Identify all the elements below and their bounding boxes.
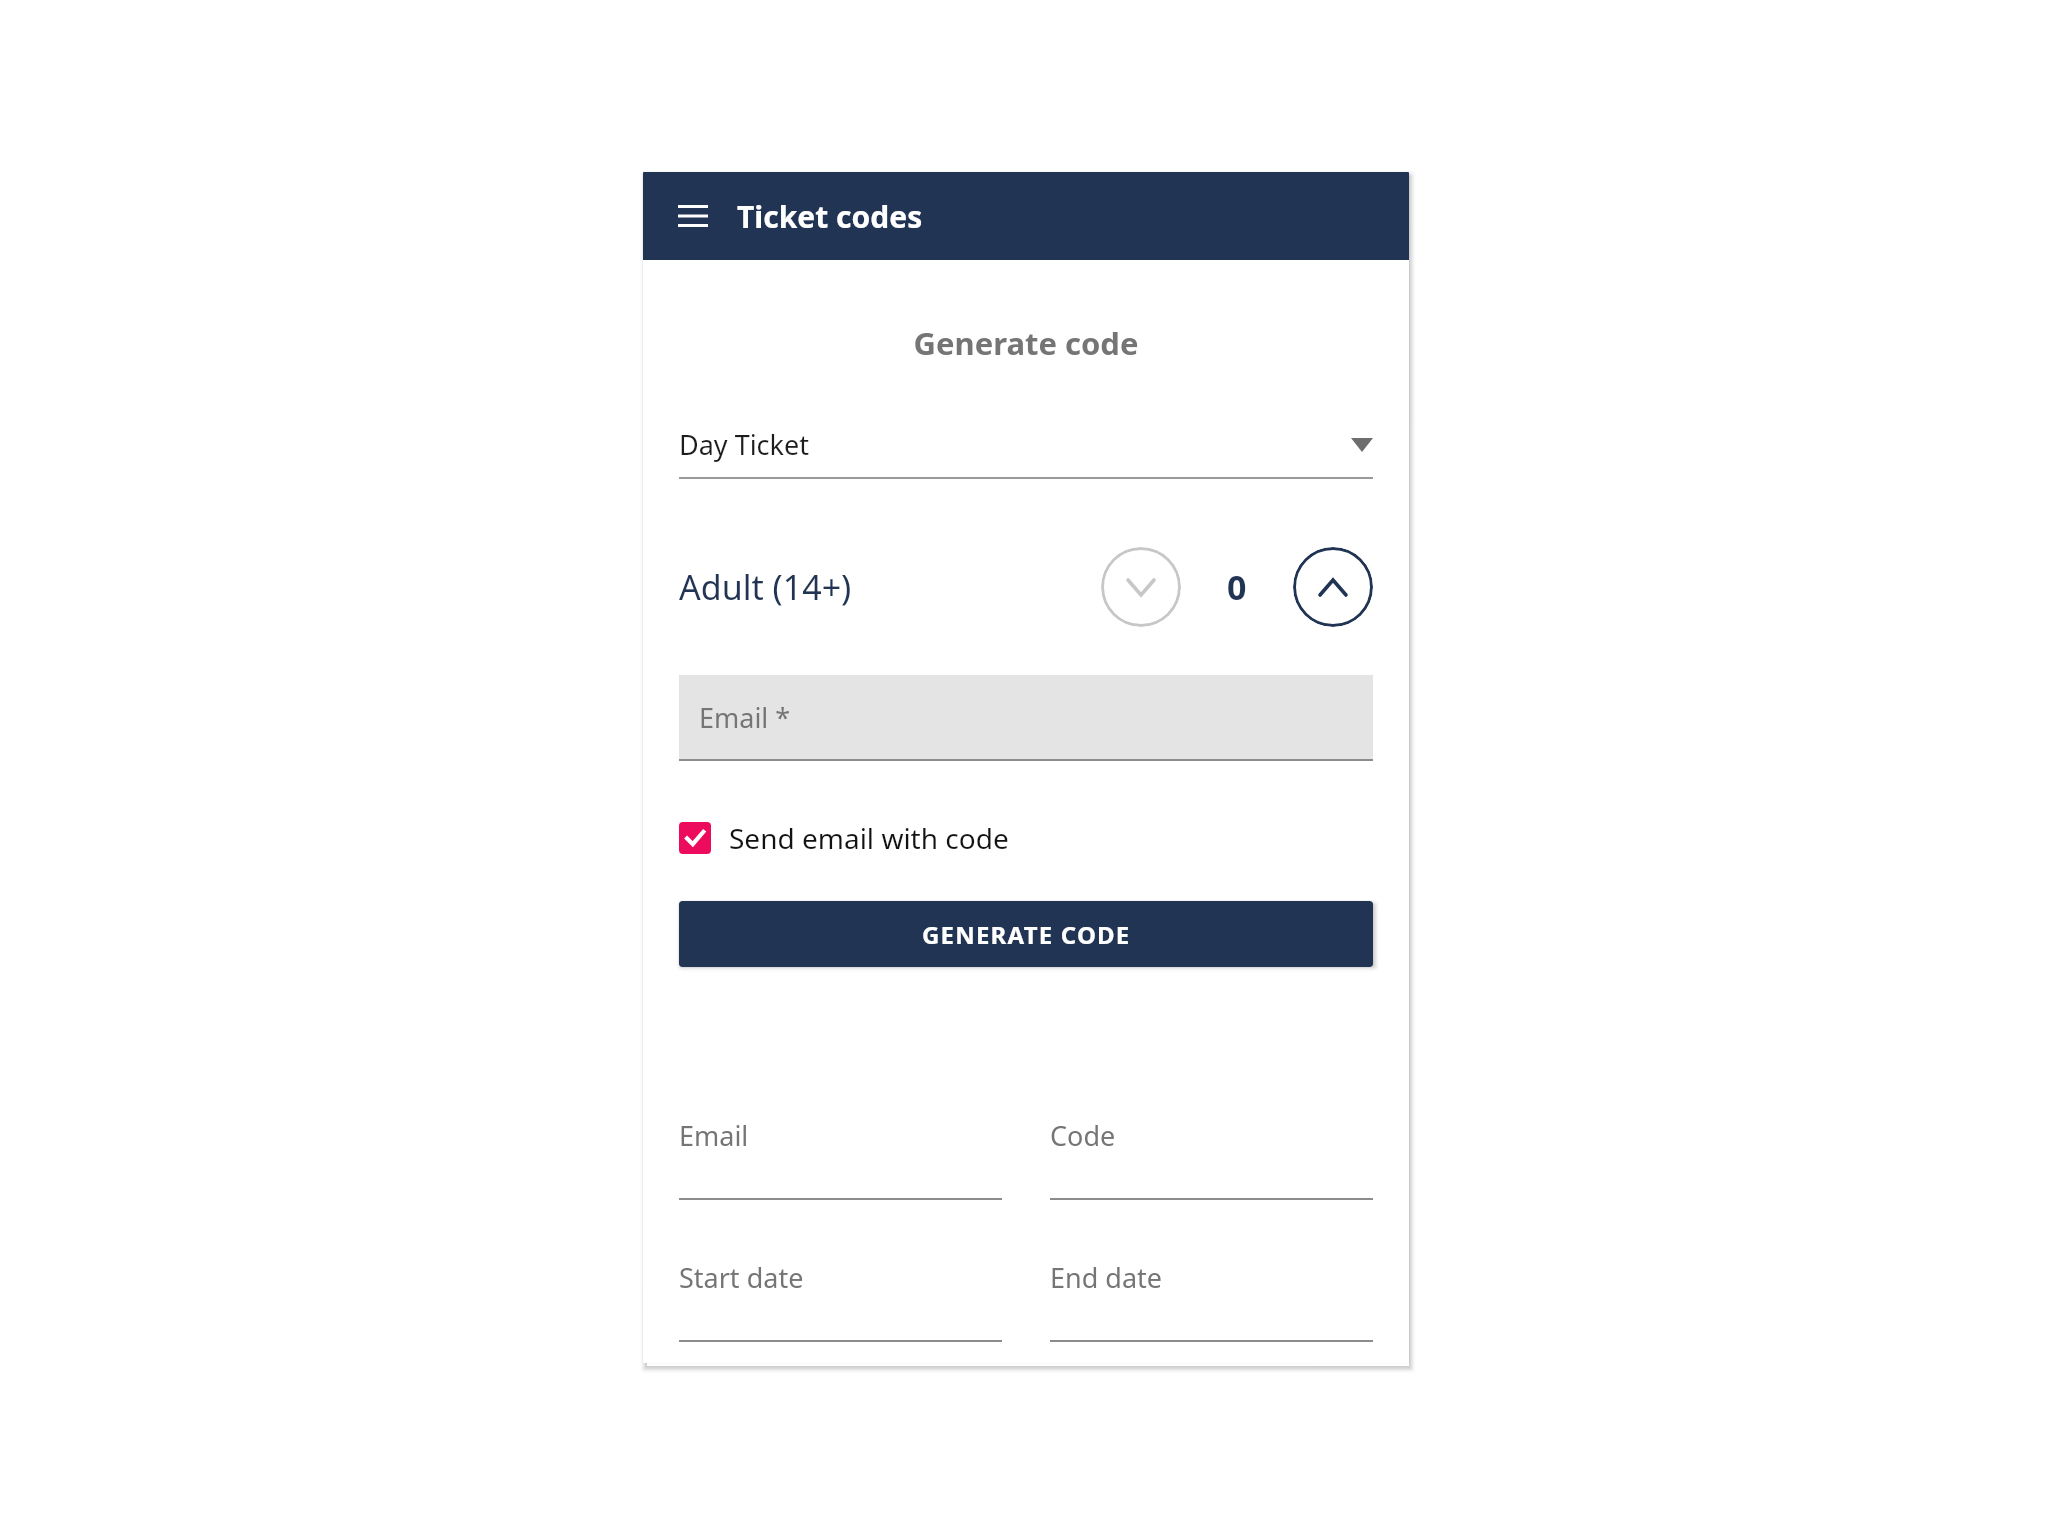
- staticText: Generate code: [679, 322, 1373, 364]
- button[interactable]: Open navigation menu: [671, 194, 715, 238]
- staticText: 0: [1227, 564, 1247, 610]
- staticText: GENERATE CODE: [922, 918, 1131, 951]
- staticText: Adult (14+): [679, 564, 1101, 610]
- staticText: Email *: [699, 699, 791, 736]
- button[interactable]: Decrease: [1101, 547, 1181, 627]
- staticText: Code: [1050, 1117, 1116, 1154]
- staticText: Email: [679, 1117, 749, 1154]
- staticText: Send email with code: [729, 819, 1009, 857]
- button[interactable]: Code: [1050, 1117, 1373, 1200]
- button[interactable]: End date: [1050, 1259, 1373, 1342]
- button[interactable]: Email *: [679, 675, 1373, 761]
- button[interactable]: Increase: [1293, 547, 1373, 627]
- staticText: Ticket codes: [737, 196, 923, 237]
- button[interactable]: Send email with code: [679, 819, 1009, 857]
- button[interactable]: Email: [679, 1117, 1002, 1200]
- staticText: End date: [1050, 1259, 1163, 1296]
- button[interactable]: Start date: [679, 1259, 1002, 1342]
- button[interactable]: GENERATE CODE: [679, 901, 1373, 967]
- staticText: Start date: [679, 1259, 804, 1296]
- staticText: Day Ticket: [679, 426, 1351, 463]
- button[interactable]: Day Ticket: [679, 426, 1373, 479]
